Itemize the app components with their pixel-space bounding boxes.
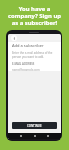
- staticText: name@example.com: [12, 68, 40, 71]
- staticText: E-MAIL ADDRESS: [12, 62, 35, 66]
- staticText: CONTINUE: [27, 124, 42, 128]
- staticText: You have a company? Sign up as a subscri…: [5, 5, 64, 27]
- button[interactable]: Back: [11, 35, 17, 41]
- staticText: Enter the e-mail address of the person y…: [12, 51, 57, 58]
- staticText: Add a subscriber: [12, 43, 44, 48]
- button[interactable]: CONTINUE: [12, 122, 57, 129]
